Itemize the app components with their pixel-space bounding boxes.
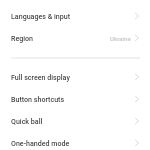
button[interactable]: Region xyxy=(0,27,150,49)
button[interactable]: One-handed mode xyxy=(0,132,150,150)
button[interactable]: Button shortcuts xyxy=(0,88,150,110)
staticText: One-handed mode xyxy=(11,139,70,147)
staticText: Full screen display xyxy=(11,73,70,81)
staticText: Ukraine xyxy=(110,35,131,42)
button[interactable]: Full screen display xyxy=(0,66,150,88)
staticText: Languages & input xyxy=(11,12,71,20)
staticText: Quick ball xyxy=(11,117,43,125)
button[interactable]: Languages & input xyxy=(0,5,150,27)
staticText: Region xyxy=(11,34,34,42)
button[interactable]: Quick ball xyxy=(0,110,150,132)
staticText: Button shortcuts xyxy=(11,95,65,103)
